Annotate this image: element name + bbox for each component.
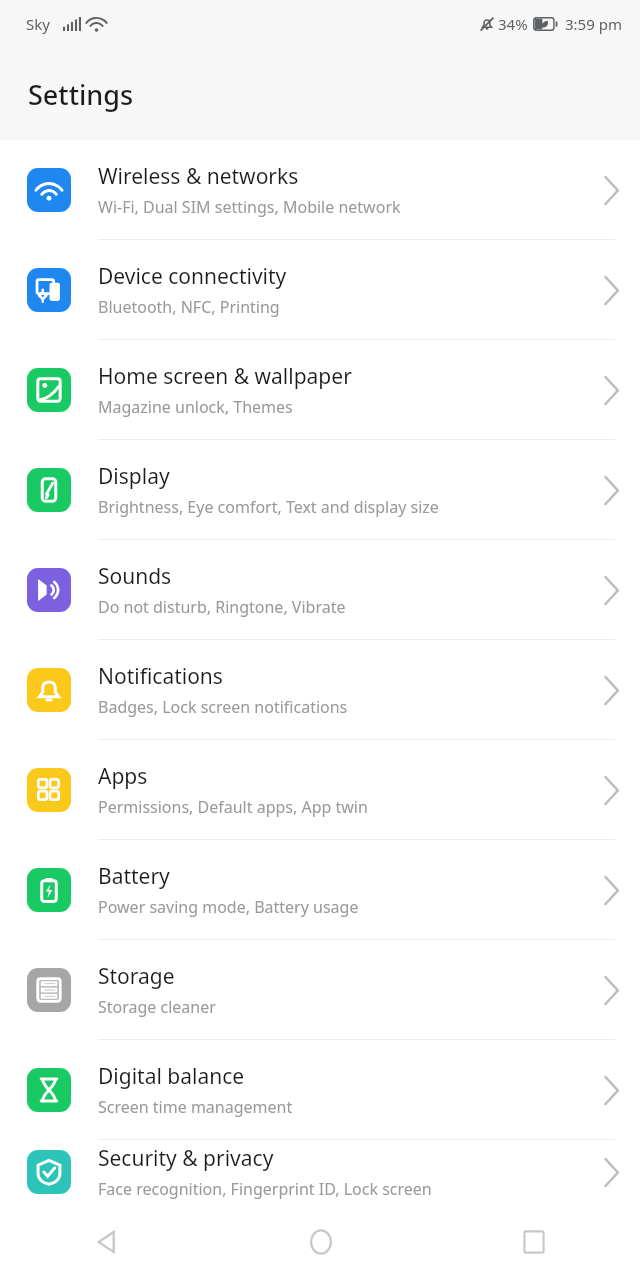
- button[interactable]: Storage: [0, 940, 640, 1040]
- staticText: Storage cleaner: [98, 996, 216, 1018]
- staticText: Storage: [98, 962, 175, 991]
- staticText: Apps: [98, 762, 148, 791]
- staticText: Sky: [26, 14, 50, 34]
- staticText: Security & privacy: [98, 1144, 274, 1173]
- button[interactable]: Recent apps: [427, 1204, 640, 1280]
- staticText: Permissions, Default apps, App twin: [98, 796, 368, 818]
- button[interactable]: Security & privacy: [0, 1140, 640, 1204]
- button[interactable]: Notifications: [0, 640, 640, 740]
- staticText: Bluetooth, NFC, Printing: [98, 296, 280, 318]
- staticText: Notifications: [98, 662, 223, 691]
- staticText: Badges, Lock screen notifications: [98, 696, 348, 718]
- button[interactable]: Home screen & wallpaper: [0, 340, 640, 440]
- staticText: Magazine unlock, Themes: [98, 396, 293, 418]
- staticText: 34%: [498, 14, 528, 34]
- button[interactable]: Sounds: [0, 540, 640, 640]
- staticText: Brightness, Eye comfort, Text and displa…: [98, 496, 439, 518]
- staticText: Wireless & networks: [98, 162, 299, 191]
- staticText: 3:59 pm: [565, 14, 622, 34]
- staticText: Home screen & wallpaper: [98, 362, 352, 391]
- staticText: Battery: [98, 862, 170, 891]
- button[interactable]: Home: [214, 1204, 427, 1280]
- staticText: Digital balance: [98, 1062, 245, 1091]
- staticText: Do not disturb, Ringtone, Vibrate: [98, 596, 346, 618]
- staticText: Display: [98, 462, 170, 491]
- button[interactable]: Digital balance: [0, 1040, 640, 1140]
- button[interactable]: Back: [0, 1204, 214, 1280]
- staticText: Screen time management: [98, 1096, 293, 1118]
- button[interactable]: Battery: [0, 840, 640, 940]
- button[interactable]: Apps: [0, 740, 640, 840]
- staticText: Power saving mode, Battery usage: [98, 896, 359, 918]
- staticText: Settings: [28, 76, 134, 113]
- staticText: Wi-Fi, Dual SIM settings, Mobile network: [98, 196, 401, 218]
- button[interactable]: Display: [0, 440, 640, 540]
- button[interactable]: Wireless & networks: [0, 140, 640, 240]
- staticText: Face recognition, Fingerprint ID, Lock s…: [98, 1178, 432, 1200]
- button[interactable]: Device connectivity: [0, 240, 640, 340]
- staticText: Device connectivity: [98, 262, 287, 291]
- staticText: Sounds: [98, 562, 172, 591]
